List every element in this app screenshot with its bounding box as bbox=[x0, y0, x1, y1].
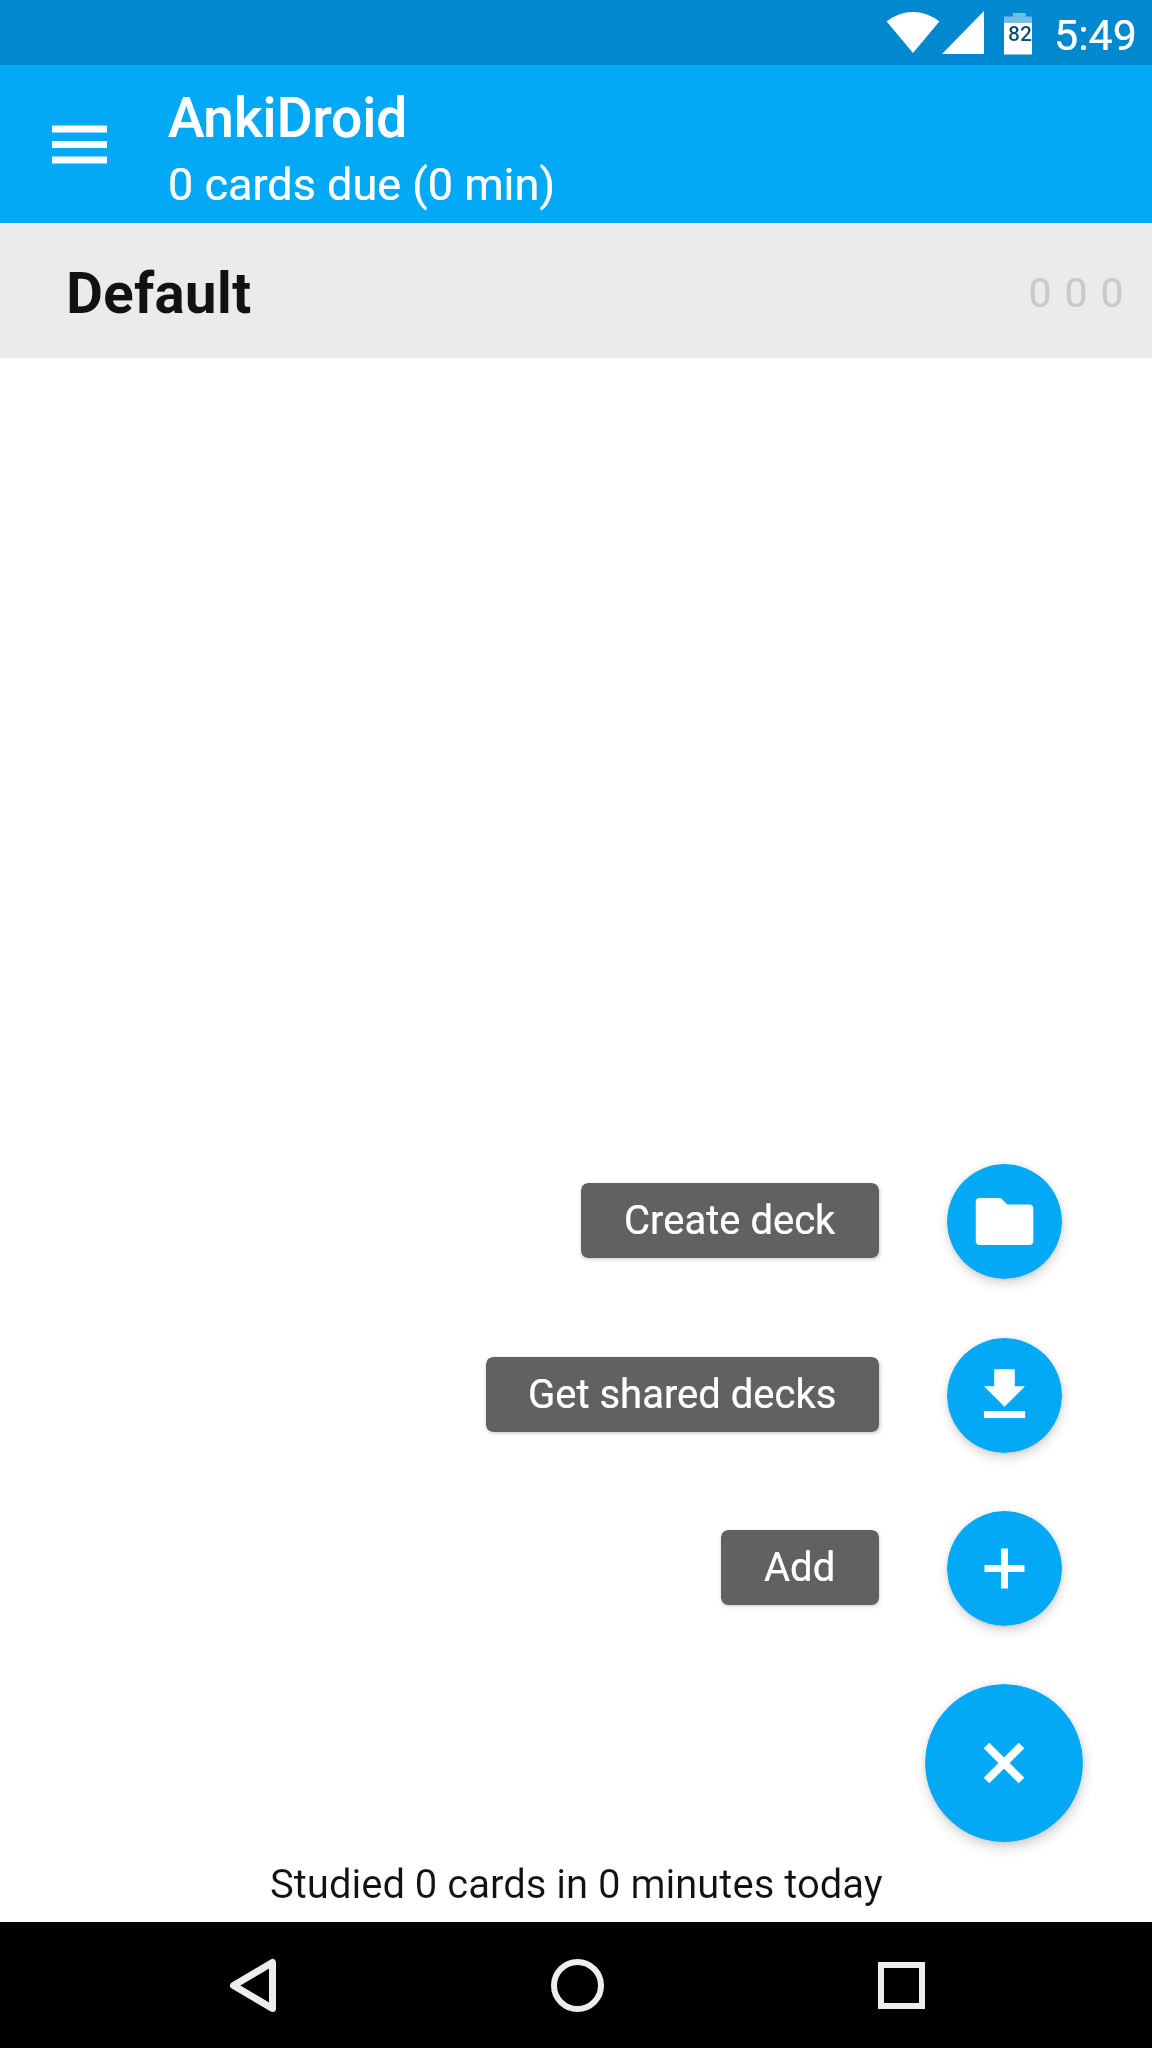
staticText: Default bbox=[66, 260, 252, 327]
button[interactable]: Recent apps bbox=[851, 1935, 951, 2035]
staticText: Studied 0 cards in 0 minutes today bbox=[270, 1861, 883, 1908]
staticText: Add bbox=[764, 1544, 836, 1591]
button[interactable]: Create deck bbox=[581, 1183, 879, 1258]
staticText: 82 bbox=[1008, 22, 1032, 47]
button[interactable]: Add bbox=[947, 1511, 1062, 1626]
staticText: 0 cards due (0 min) bbox=[168, 158, 556, 211]
button[interactable]: Get shared decks bbox=[486, 1357, 879, 1432]
button[interactable]: Open navigation drawer bbox=[37, 102, 122, 187]
staticText: 0 bbox=[1022, 269, 1058, 317]
staticText: Get shared decks bbox=[528, 1371, 837, 1418]
button[interactable]: Add bbox=[721, 1530, 879, 1605]
staticText: 5:49 bbox=[1054, 10, 1137, 60]
button[interactable]: Get shared decks bbox=[947, 1338, 1062, 1453]
staticText: 0 bbox=[1058, 269, 1094, 317]
button[interactable]: Home bbox=[527, 1935, 627, 2035]
button[interactable]: Back bbox=[203, 1935, 303, 2035]
staticText: AnkiDroid bbox=[168, 86, 408, 150]
button[interactable]: Create deck bbox=[947, 1164, 1062, 1279]
button[interactable]: Close actions menu bbox=[925, 1684, 1083, 1842]
button[interactable]: Default bbox=[0, 223, 1152, 358]
staticText: Create deck bbox=[624, 1197, 836, 1244]
staticText: 0 bbox=[1094, 269, 1130, 317]
